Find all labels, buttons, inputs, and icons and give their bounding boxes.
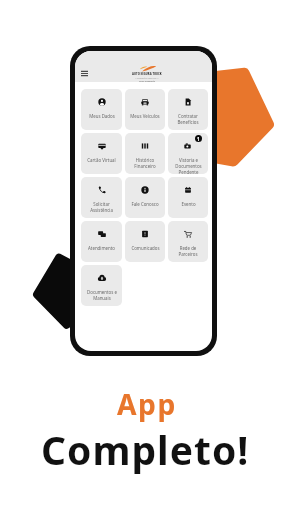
button[interactable]: Documentos e Manuais	[81, 265, 122, 306]
staticText: Comunicados	[131, 245, 160, 251]
staticText: Meus Veículos	[130, 113, 160, 119]
button[interactable]: Comunicados	[125, 221, 165, 262]
button[interactable]: Contratar Benefícios	[168, 89, 208, 130]
staticText: 1	[197, 136, 200, 142]
button[interactable]: Meus Dados	[81, 89, 122, 130]
button[interactable]: Vistoria e Documentos Pendente	[168, 133, 208, 174]
button[interactable]: Cartão Virtual	[81, 133, 122, 174]
staticText: Documentos e Manuais	[87, 289, 117, 301]
button[interactable]: Rede de Parceiros	[168, 221, 208, 262]
button[interactable]: Solicitar Assistência	[81, 177, 122, 218]
staticText: Contratar Benefícios	[177, 113, 199, 125]
staticText: Cartão Virtual	[87, 157, 116, 163]
button[interactable]: Histórico Financeiro	[125, 133, 165, 174]
button[interactable]: Menu	[78, 67, 91, 80]
button[interactable]: Meus Veículos	[125, 89, 165, 130]
staticText: Histórico Financeiro	[134, 157, 156, 169]
staticText: Completo!	[41, 423, 250, 476]
button[interactable]: Atendimento	[81, 221, 122, 262]
staticText: Solicitar Assistência	[90, 201, 113, 213]
staticText: Meus Dados	[89, 113, 115, 119]
staticText: Atendimento	[88, 245, 115, 251]
staticText: Fale Conosco	[131, 201, 159, 207]
staticText: — PROTEÇÃO VEICULAR —	[135, 77, 159, 79]
staticText: AUTO SEGURA TRUCK	[132, 72, 162, 76]
staticText: App	[117, 385, 177, 423]
staticText: ASSOC. DE PROTEÇÃO	[139, 80, 155, 82]
staticText: Rede de Parceiros	[178, 245, 198, 257]
staticText: Evento	[181, 201, 196, 207]
staticText: Vistoria e Documentos Pendente	[175, 157, 202, 174]
button[interactable]: Fale Conosco	[125, 177, 165, 218]
button[interactable]: Evento	[168, 177, 208, 218]
